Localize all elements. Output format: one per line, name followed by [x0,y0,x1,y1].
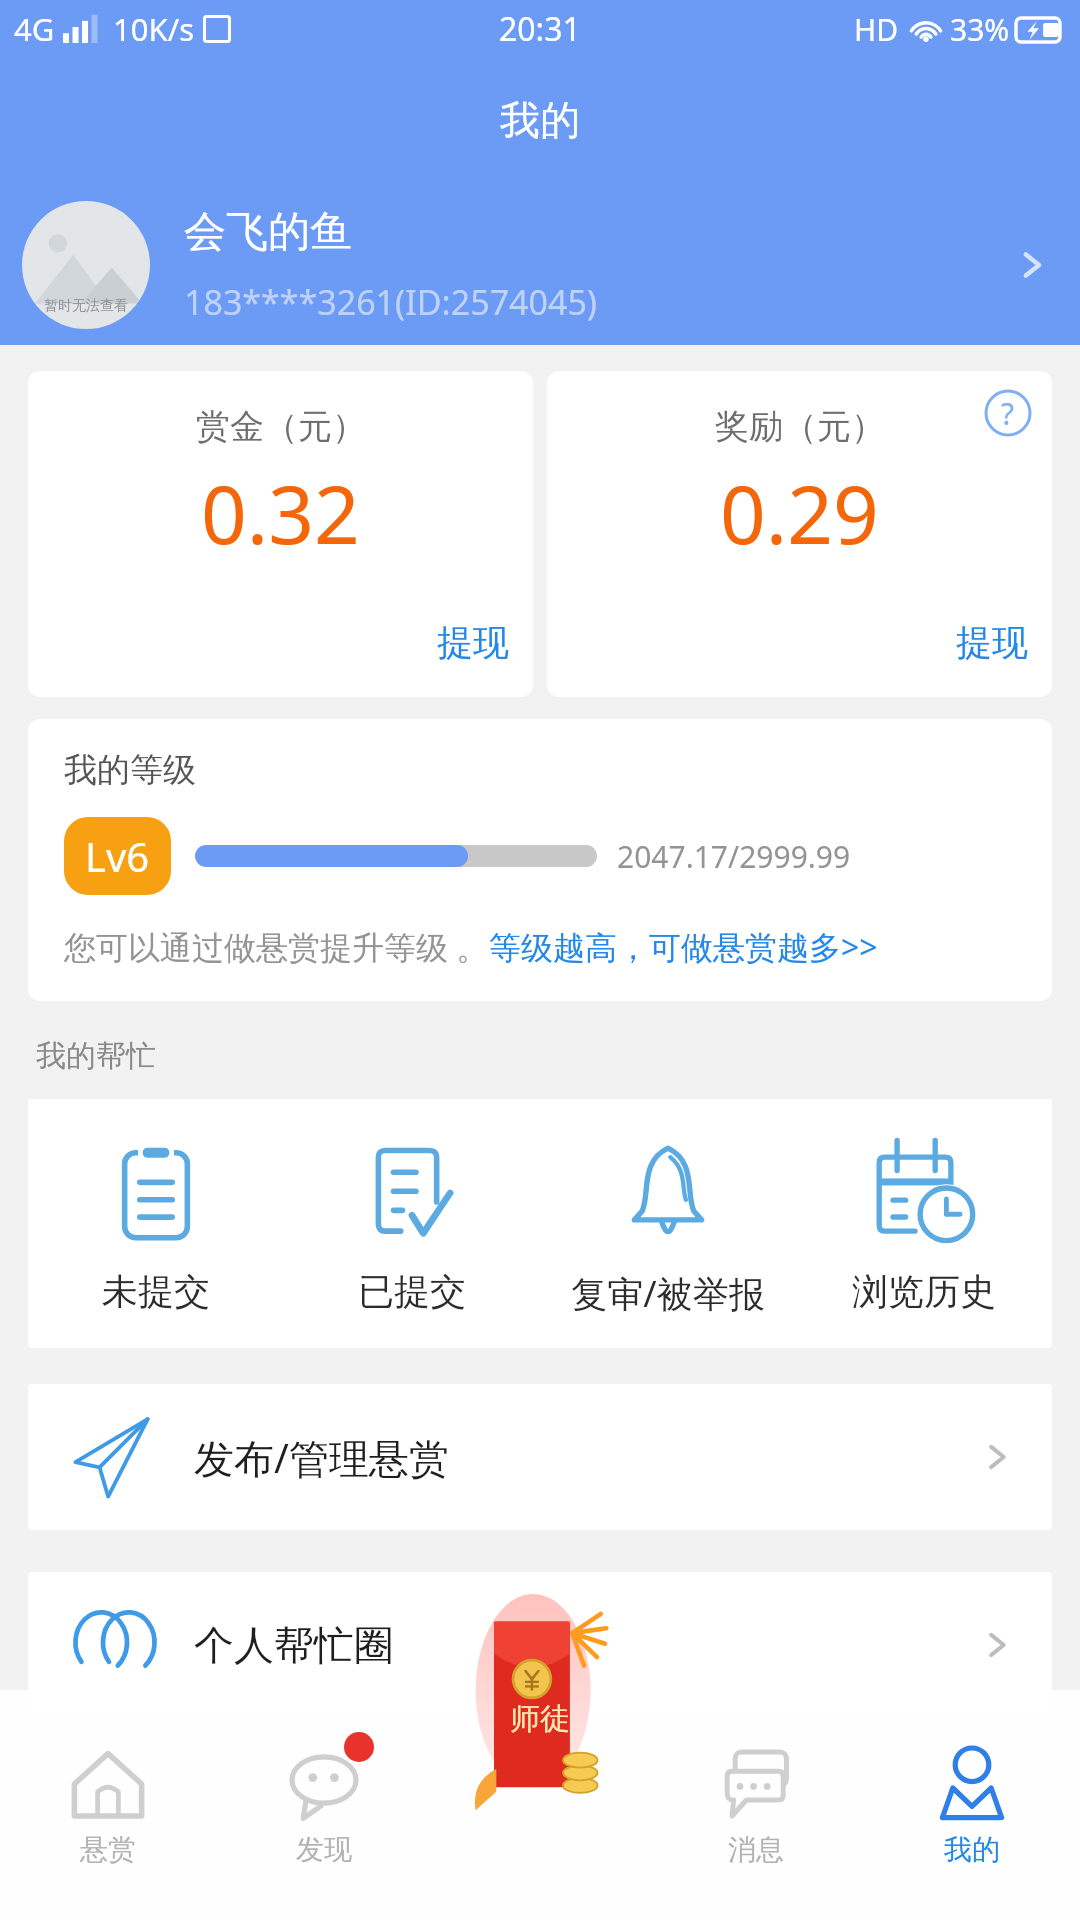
staticText: HD [854,9,899,50]
staticText: 0.32 [201,458,360,567]
staticText: 暂时无法查看 [44,297,128,315]
staticText: 我的帮忙 [36,1037,156,1075]
button[interactable]: 未提交 [28,1133,284,1318]
button[interactable]: 已提交 [284,1133,540,1318]
button[interactable]: 奖励（元） [547,371,1052,697]
button[interactable]: 发布/管理悬赏 [28,1384,1052,1530]
staticText: 已提交 [358,1269,466,1314]
staticText: 183****3261(ID:2574045) [184,279,598,325]
staticText: 会飞的鱼 [184,206,352,259]
staticText: 浏览历史 [852,1269,996,1314]
staticText: 未提交 [102,1269,210,1314]
staticText: Lv6 [85,829,150,883]
button[interactable]: 帮助说明 [980,385,1036,441]
staticText: 我的 [944,1832,1000,1867]
staticText: 2047.17/2999.99 [617,836,851,877]
button[interactable]: 提现 [437,620,533,697]
staticText: 我的 [500,95,580,145]
staticText: 0.29 [720,458,879,567]
staticText: 10K/s [113,8,195,50]
staticText: 复审/被举报 [571,1269,765,1318]
button[interactable]: 师徒红包 [425,1594,655,1824]
button[interactable]: 浏览历史 [796,1133,1052,1318]
button[interactable]: 等级越高，可做悬赏越多>> [489,925,878,969]
staticText: 发布/管理悬赏 [194,1430,976,1485]
staticText: 个人帮忙圈 [194,1620,976,1670]
staticText: 奖励（元） [715,405,885,448]
staticText: 33% [950,9,1010,50]
button[interactable]: 赏金（元） [28,371,533,697]
button[interactable]: 我的 [864,1690,1080,1920]
staticText: 20:31 [499,7,581,51]
staticText: 师徒 [510,1700,570,1738]
staticText: ? [1001,393,1015,434]
button[interactable]: 我的等级 [28,719,1052,1001]
button[interactable]: 复审/被举报 [540,1133,796,1322]
staticText: 4G [14,8,55,50]
button[interactable]: 悬赏 [0,1690,216,1920]
staticText: 发现 [296,1832,352,1867]
button[interactable]: 个人帮忙圈 [28,1572,1052,1718]
staticText: 您可以通过做悬赏提升等级 。 [64,925,489,969]
staticText: 悬赏 [80,1832,136,1867]
staticText: 赏金（元） [196,405,366,448]
button[interactable]: 暂时无法查看 [0,201,1080,329]
button[interactable]: 提现 [956,620,1052,697]
button[interactable]: 消息 [648,1690,864,1920]
button[interactable]: 发现 [216,1690,432,1920]
staticText: 消息 [728,1832,784,1867]
staticText: 我的等级 [64,749,196,791]
